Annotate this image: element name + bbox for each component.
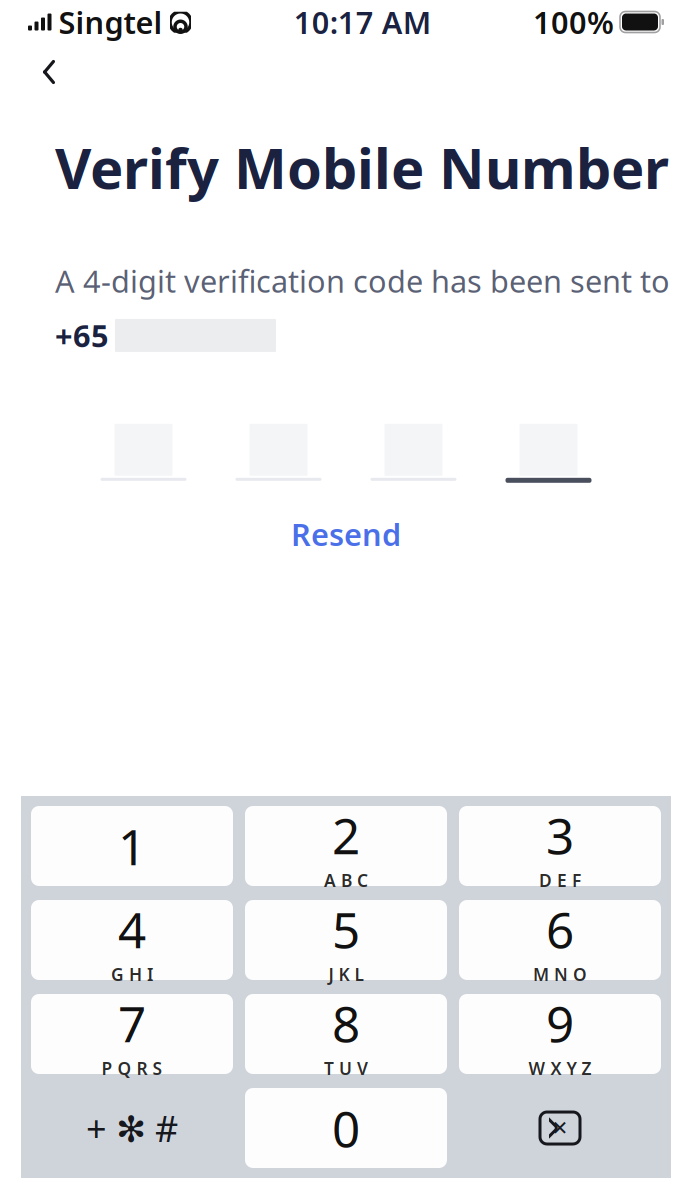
button[interactable]: 3: [459, 806, 661, 886]
button[interactable]: Back: [0, 52, 60, 92]
staticText: D E F: [539, 869, 581, 892]
button[interactable]: 4: [31, 900, 233, 980]
staticText: Resend: [291, 514, 401, 554]
staticText: + ✻ #: [86, 1104, 178, 1152]
staticText: 5: [332, 896, 360, 962]
staticText: 9: [546, 990, 574, 1056]
button[interactable]: 9: [459, 994, 661, 1074]
staticText: +65: [55, 315, 109, 356]
staticText: 0: [332, 1095, 360, 1161]
button[interactable]: Symbols: [31, 1088, 233, 1168]
button[interactable]: Resend: [273, 508, 419, 560]
staticText: A 4-digit verification code has been sen…: [55, 260, 670, 301]
staticText: 4: [118, 896, 146, 962]
button[interactable]: 1: [31, 806, 233, 886]
staticText: P Q R S: [101, 1057, 162, 1080]
staticText: 7: [118, 990, 146, 1056]
button[interactable]: 0: [245, 1088, 447, 1168]
staticText: 1: [118, 813, 146, 879]
staticText: 2: [332, 802, 360, 868]
staticText: A B C: [324, 869, 368, 892]
button[interactable]: 7: [31, 994, 233, 1074]
button[interactable]: 8: [245, 994, 447, 1074]
button[interactable]: 6: [459, 900, 661, 980]
staticText: W X Y Z: [528, 1057, 591, 1080]
staticText: M N O: [533, 963, 587, 986]
staticText: 6: [546, 896, 574, 962]
button[interactable]: 5: [245, 900, 447, 980]
staticText: J K L: [328, 963, 363, 986]
button[interactable]: 2: [245, 806, 447, 886]
staticText: Verify Mobile Number: [55, 130, 669, 204]
staticText: 10:17 AM: [294, 2, 431, 42]
staticText: Singtel: [58, 2, 162, 42]
staticText: 3: [546, 802, 574, 868]
staticText: T U V: [324, 1057, 368, 1080]
staticText: G H I: [111, 963, 153, 986]
staticText: 8: [332, 990, 360, 1056]
staticText: 100%: [533, 2, 614, 42]
button[interactable]: Delete: [459, 1088, 661, 1168]
staticText: ✕: [551, 1117, 568, 1139]
